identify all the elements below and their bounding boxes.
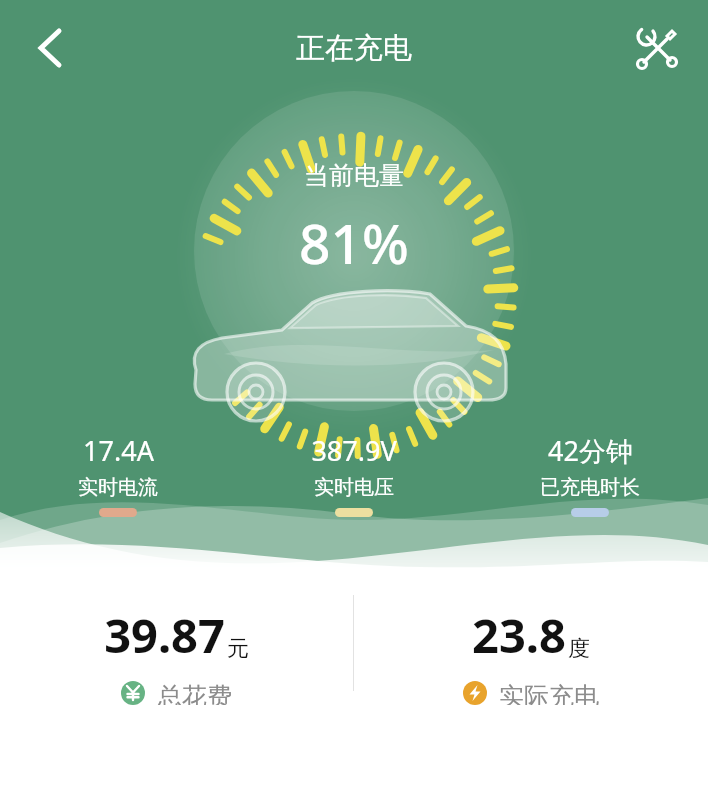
staticText: 81% [299, 205, 409, 280]
button[interactable]: Settings [626, 16, 690, 80]
button[interactable]: 17.4A [0, 432, 236, 517]
staticText: 总花费 [157, 681, 232, 705]
staticText: 正在充电 [296, 30, 412, 67]
staticText: 实际充电 [499, 681, 599, 705]
staticText: 42分钟 [548, 432, 633, 469]
button[interactable]: 39.87 [0, 595, 353, 705]
button[interactable]: Back [18, 16, 82, 80]
staticText: 17.4A [83, 432, 154, 469]
staticText: 23.8 [472, 603, 566, 667]
staticText: 当前电量 [304, 160, 404, 191]
staticText: 实时电流 [78, 475, 158, 500]
button[interactable]: 387.9V [236, 432, 472, 517]
staticText: 度 [568, 635, 590, 663]
staticText: 已充电时长 [540, 475, 640, 500]
staticText: 39.87 [104, 603, 225, 667]
button[interactable]: 42分钟 [472, 432, 708, 517]
staticText: 387.9V [311, 432, 397, 469]
staticText: 实时电压 [314, 475, 394, 500]
staticText: 元 [227, 635, 249, 663]
button[interactable]: 23.8 [354, 595, 708, 705]
